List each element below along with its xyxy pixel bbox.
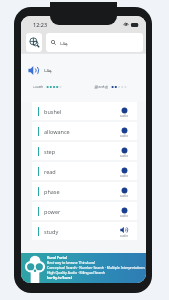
button[interactable]: study <box>32 222 137 240</box>
staticText: audio <box>120 214 128 218</box>
staticText: Best way to browse Thirukural <box>47 260 96 265</box>
button[interactable]: Play pronunciation <box>27 64 39 76</box>
button[interactable]: step <box>32 142 137 160</box>
button[interactable]: read <box>32 162 137 180</box>
staticText: Kural Portal <box>47 255 68 260</box>
staticText: படி <box>60 40 68 46</box>
staticText: இலக்கு <box>94 84 108 89</box>
staticText: step <box>44 148 56 155</box>
button[interactable]: App logo <box>26 33 42 52</box>
staticText: High Quality Audio · Bilingual Search <box>47 270 106 275</box>
staticText: audio <box>120 114 128 118</box>
button[interactable]: power <box>32 202 137 220</box>
staticText: பயன் <box>33 84 43 89</box>
button[interactable]: Kural Portal <box>21 253 146 283</box>
staticText: Conceptual Search · Number Search · Mult… <box>47 265 145 270</box>
button[interactable]: bushel <box>32 102 137 120</box>
staticText: allowance <box>44 128 70 135</box>
staticText: power <box>44 208 61 215</box>
staticText: kurlty.tv/kural <box>47 275 72 280</box>
button[interactable]: படி <box>46 33 143 52</box>
button[interactable]: allowance <box>32 122 137 140</box>
button[interactable]: phase <box>32 182 137 200</box>
staticText: audio <box>120 134 128 138</box>
staticText: audio <box>120 234 128 238</box>
staticText: படி <box>44 67 52 73</box>
staticText: bushel <box>44 108 62 115</box>
staticText: read <box>44 168 56 175</box>
staticText: audio <box>120 174 128 178</box>
staticText: 12:23 <box>33 21 48 28</box>
staticText: audio <box>120 194 128 198</box>
staticText: study <box>44 228 59 235</box>
staticText: phase <box>44 188 60 195</box>
staticText: audio <box>120 154 128 158</box>
